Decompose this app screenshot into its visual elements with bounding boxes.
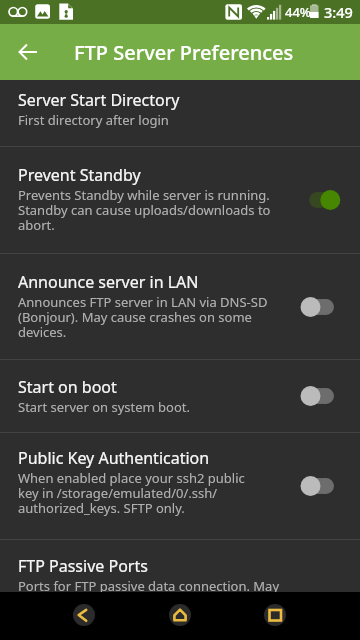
staticText: Announces FTP server in LAN via DNS-SD (…: [18, 293, 280, 341]
button[interactable]: Announce server in LAN: [0, 254, 360, 359]
staticText: FTP Server Preferences: [74, 39, 294, 66]
staticText: 44%: [285, 3, 311, 21]
staticText: 3:49: [324, 2, 353, 22]
staticText: Prevents Standby while server is running…: [18, 186, 280, 234]
staticText: Public Key Authentication: [18, 447, 210, 469]
button[interactable]: Public Key Authentication: [0, 433, 360, 539]
button[interactable]: Prevent Standby: [0, 147, 360, 253]
staticText: FTP Passive Ports: [18, 555, 148, 577]
staticText: Prevent Standby: [18, 164, 141, 186]
button[interactable]: FTP Passive Ports: [0, 540, 360, 592]
button[interactable]: Home: [169, 604, 191, 626]
staticText: When enabled place your ssh2 public key …: [18, 469, 245, 517]
staticText: First directory after login: [18, 111, 169, 129]
staticText: Start on boot: [18, 376, 117, 398]
button[interactable]: Recents: [264, 604, 286, 626]
staticText: Ports for FTP passive data connection. M…: [18, 577, 280, 595]
button[interactable]: Start on boot: [0, 360, 360, 432]
button[interactable]: Server Start Directory: [0, 80, 360, 146]
button[interactable]: Back: [73, 604, 95, 626]
staticText: Start server on system boot.: [18, 398, 191, 416]
staticText: Server Start Directory: [18, 89, 180, 111]
staticText: Announce server in LAN: [18, 271, 199, 293]
button[interactable]: Back: [4, 28, 52, 76]
